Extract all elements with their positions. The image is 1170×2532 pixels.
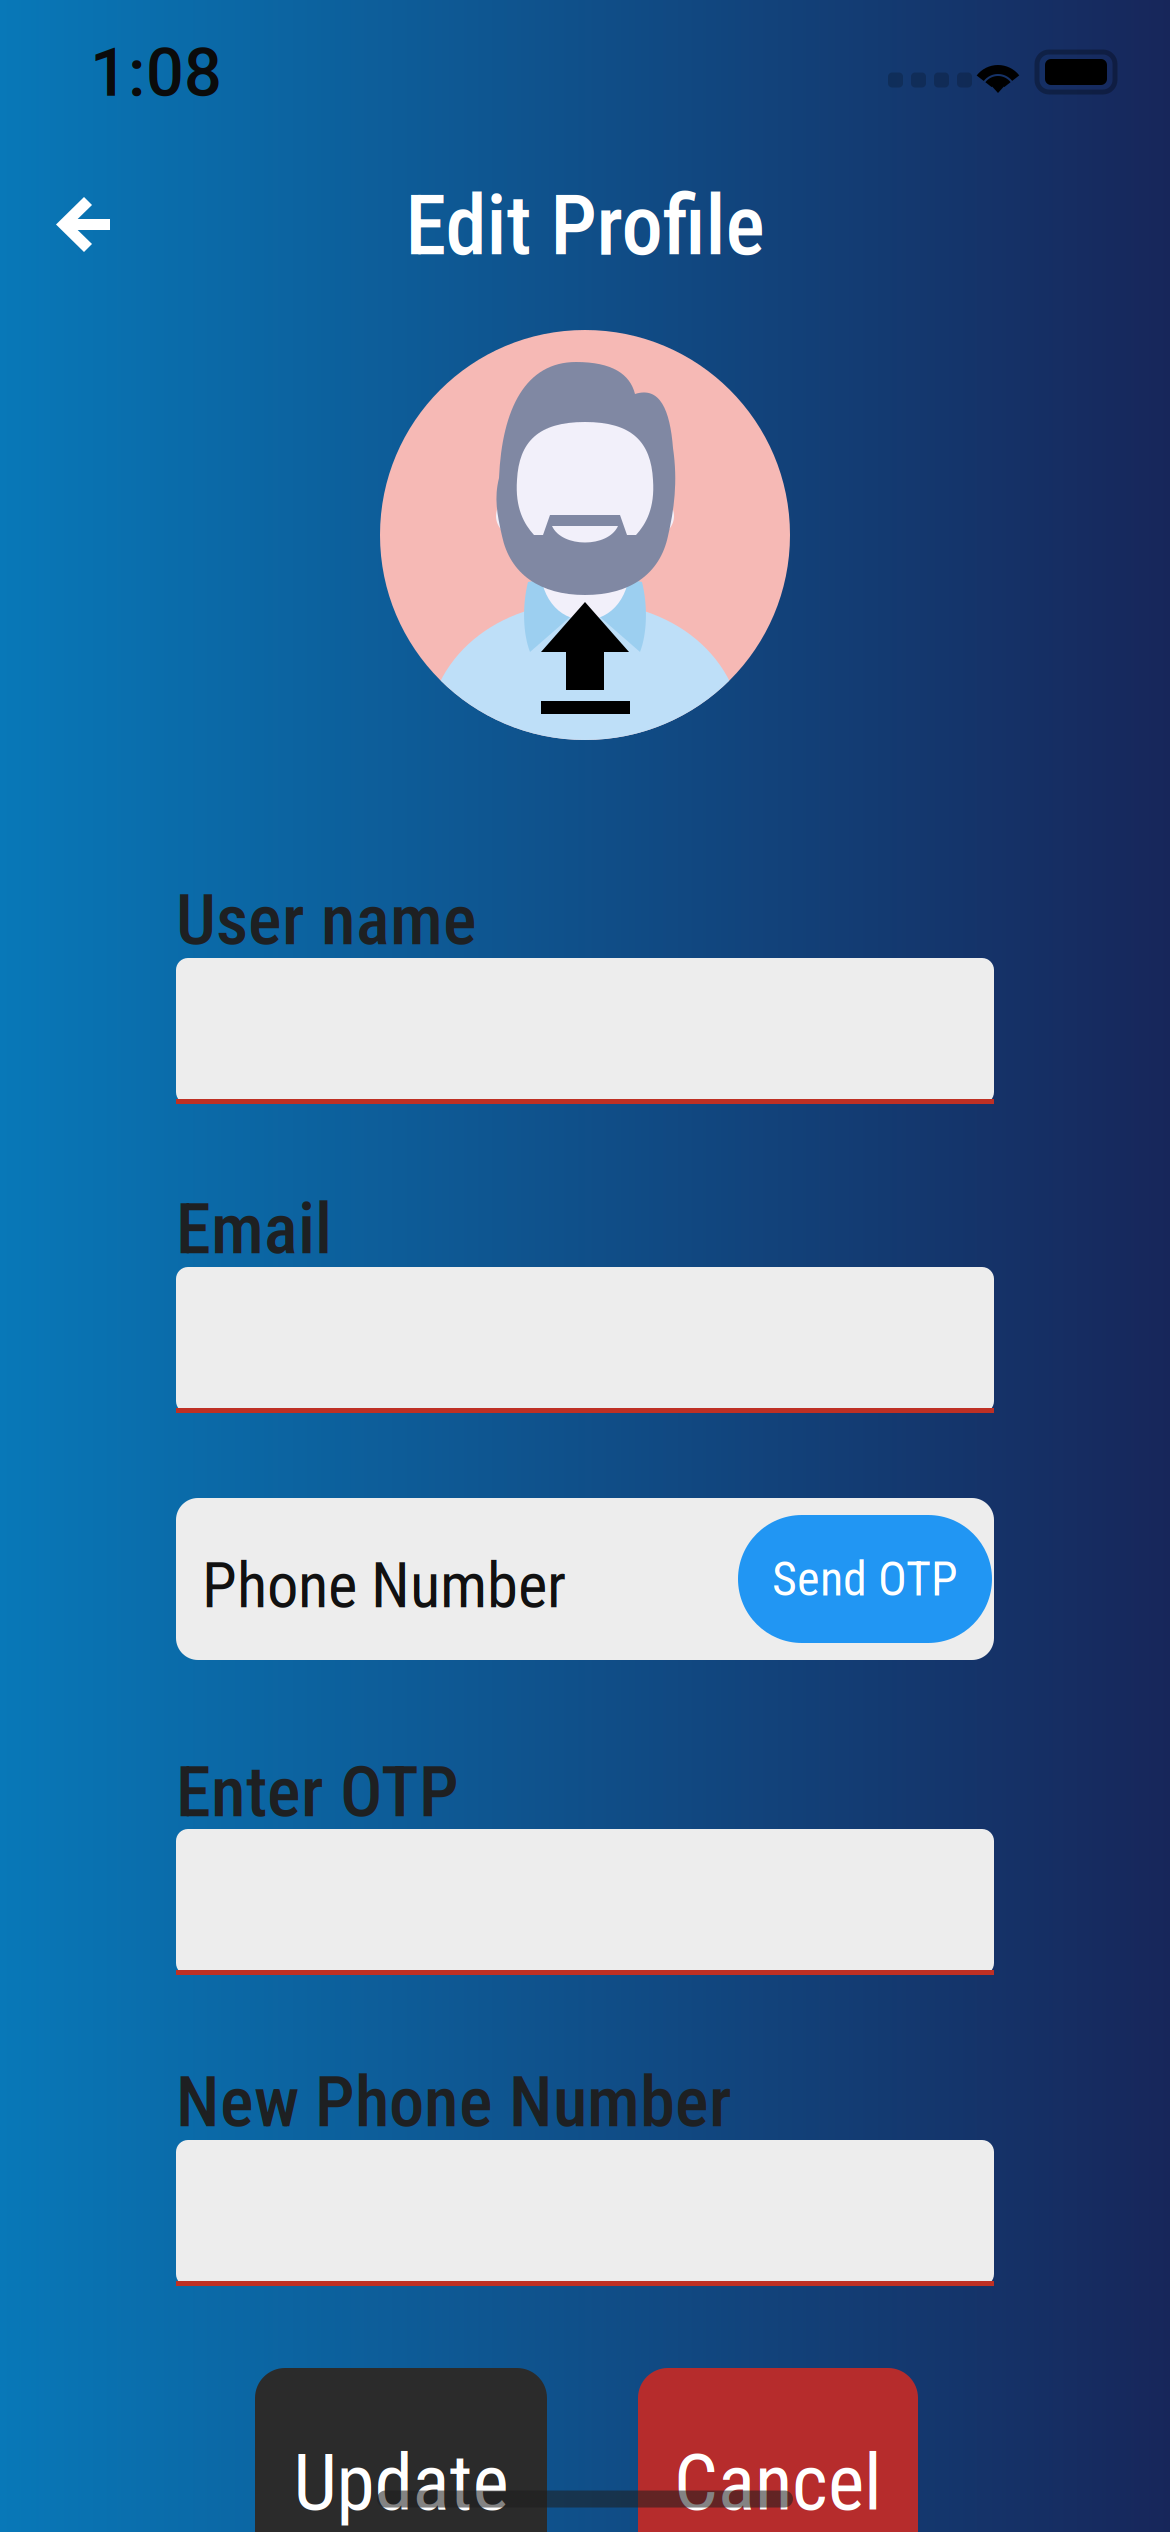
staticText: Phone Number xyxy=(202,1549,566,1622)
button[interactable]: Update xyxy=(255,2368,547,2532)
button[interactable]: Back xyxy=(24,165,144,285)
staticText: New Phone Number xyxy=(176,2061,732,2143)
staticText: Cancel xyxy=(674,2438,882,2528)
staticText: User name xyxy=(176,879,477,961)
staticText: 1:08 xyxy=(90,34,222,112)
button[interactable]: Send OTP xyxy=(738,1515,992,1643)
staticText: Edit Profile xyxy=(405,178,764,274)
staticText: Update xyxy=(293,2438,508,2528)
staticText: Enter OTP xyxy=(176,1751,459,1833)
button[interactable]: Change profile photo xyxy=(380,330,790,740)
button[interactable]: Cancel xyxy=(638,2368,918,2532)
staticText: Email xyxy=(176,1188,332,1270)
staticText: Send OTP xyxy=(772,1551,958,1607)
